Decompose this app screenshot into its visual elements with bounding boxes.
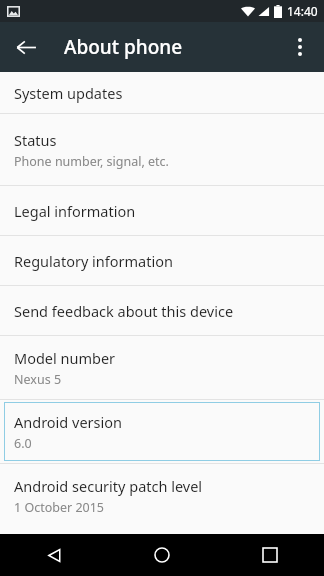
button[interactable]: System updates — [0, 72, 324, 113]
button[interactable]: Regulatory information — [0, 236, 324, 285]
button[interactable]: Android version — [4, 402, 320, 461]
button[interactable]: Recent apps — [216, 534, 324, 576]
staticText: Model number — [14, 348, 116, 368]
staticText: 14:40 — [287, 3, 318, 19]
button[interactable]: Home — [108, 534, 216, 576]
staticText: Legal information — [14, 201, 136, 221]
staticText: System updates — [14, 83, 123, 103]
staticText: Nexus 5 — [14, 371, 62, 388]
button[interactable]: Back — [0, 534, 108, 576]
staticText: Status — [14, 130, 57, 150]
staticText: About phone — [64, 34, 183, 60]
staticText: 6.0 — [14, 435, 32, 452]
button[interactable]: Android security patch level — [0, 464, 324, 527]
staticText: Regulatory information — [14, 251, 173, 271]
button[interactable]: Model number — [0, 336, 324, 399]
button[interactable]: Legal information — [0, 186, 324, 235]
staticText: Android security patch level — [14, 476, 203, 496]
staticText: Phone number, signal, etc. — [14, 153, 169, 170]
staticText: 1 October 2015 — [14, 499, 104, 516]
button[interactable]: Send feedback about this device — [0, 286, 324, 335]
staticText: Send feedback about this device — [14, 301, 234, 321]
button[interactable]: Status — [0, 114, 324, 185]
button[interactable]: Back — [6, 27, 46, 67]
button[interactable]: More options — [279, 26, 321, 68]
staticText: Android version — [14, 412, 122, 432]
